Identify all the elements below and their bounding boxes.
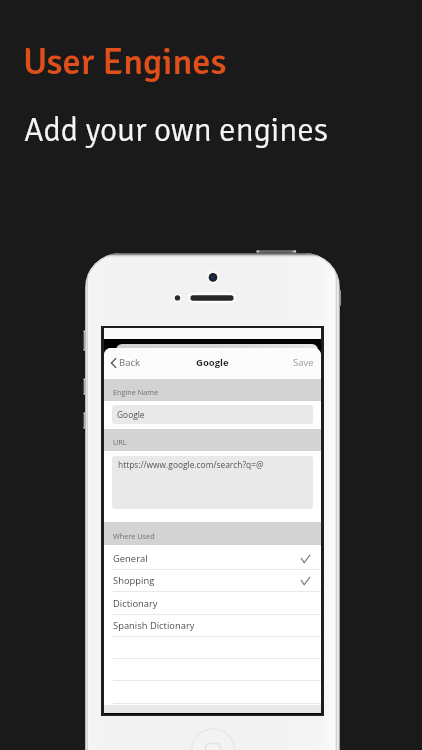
button[interactable]: Back bbox=[111, 356, 140, 370]
staticText: Add your own engines bbox=[24, 110, 329, 151]
button[interactable]: Spanish Dictionary bbox=[104, 615, 321, 637]
staticText: URL bbox=[113, 437, 127, 447]
button[interactable]: Shopping bbox=[104, 570, 321, 592]
staticText: Back bbox=[119, 356, 140, 369]
button[interactable]: General bbox=[104, 548, 321, 570]
staticText: Shopping bbox=[113, 574, 155, 587]
staticText: Dictionary bbox=[113, 597, 158, 610]
button[interactable] bbox=[104, 659, 321, 681]
other: Selected bbox=[301, 577, 310, 585]
staticText: Save bbox=[293, 356, 314, 369]
button[interactable] bbox=[104, 682, 321, 704]
other: Selected bbox=[301, 555, 310, 563]
staticText: https://www.google.com/search?q=@ bbox=[118, 459, 264, 470]
staticText: User Engines bbox=[23, 40, 227, 85]
button[interactable]: Save bbox=[293, 356, 314, 369]
button[interactable] bbox=[104, 637, 321, 659]
staticText: Google bbox=[117, 409, 145, 420]
staticText: Engine Name bbox=[113, 387, 159, 397]
staticText: Google bbox=[196, 356, 229, 369]
staticText: General bbox=[113, 552, 148, 565]
button[interactable]: Dictionary bbox=[104, 593, 321, 615]
other: Back bbox=[111, 358, 116, 368]
staticText: Where Used bbox=[113, 531, 155, 541]
staticText: Spanish Dictionary bbox=[113, 619, 195, 632]
